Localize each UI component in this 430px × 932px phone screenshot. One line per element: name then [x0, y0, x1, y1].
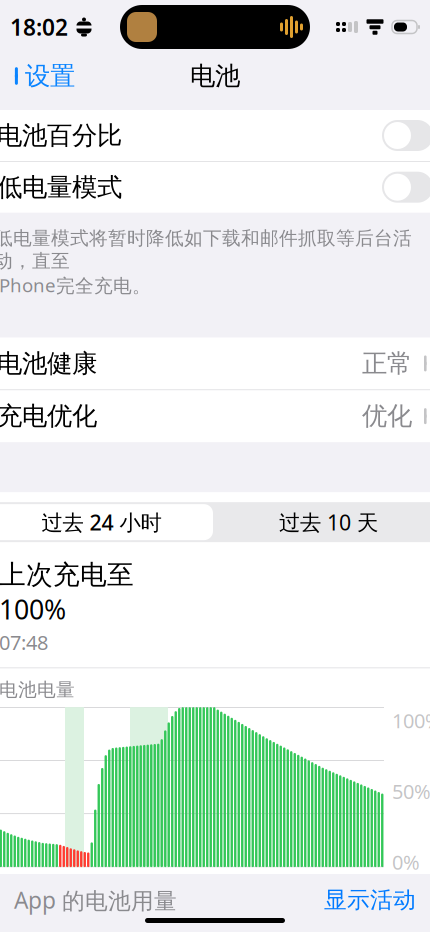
staticText: 21 [0, 905, 21, 931]
staticText: ⚡ [165, 877, 197, 906]
staticText: 优化 [362, 401, 412, 432]
button[interactable]: 电池健康 [0, 337, 430, 389]
button[interactable]: 过去 24 小时 [0, 502, 215, 542]
staticText: 0% [392, 849, 420, 875]
button[interactable]: 充电优化 [0, 390, 430, 442]
staticText: 正常 [362, 348, 412, 379]
button[interactable]: 电池百分比 [0, 110, 430, 161]
button[interactable]: 显示活动 [324, 886, 416, 914]
staticText: 100% [392, 707, 430, 734]
staticText: 12时 [250, 893, 272, 932]
staticText: 06 [149, 905, 171, 931]
staticText: 50% [392, 778, 430, 804]
staticText: 电池健康 [0, 348, 97, 379]
staticText: 18 [350, 905, 372, 931]
staticText: 09 [200, 905, 222, 931]
button[interactable]: 设置 [0, 54, 83, 97]
button[interactable]: 过去 10 天 [215, 502, 430, 542]
staticText: App 的电池用量 [14, 885, 177, 915]
staticText: 显示活动 [324, 886, 416, 914]
button[interactable]: 低电量模式 [0, 162, 430, 213]
staticText: 低电量模式将暂时降低如下载和邮件抓取等后台活动，直至 iPhone完全充电。 [0, 227, 412, 297]
staticText: 设置 [25, 60, 75, 91]
staticText: 电池电量 [0, 678, 75, 701]
staticText: 07:48 [0, 629, 48, 656]
staticText: 低电量模式 [0, 172, 122, 203]
staticText: 过去 10 天 [279, 508, 378, 536]
staticText: 03 [99, 905, 121, 931]
staticText: 0时 [49, 905, 80, 931]
staticText: 充电优化 [0, 401, 97, 432]
staticText: 上次充电至 100% [0, 556, 134, 627]
staticText: 过去 24 小时 [41, 508, 161, 536]
staticText: 电池 [190, 60, 240, 91]
staticText: 18:02 [10, 12, 68, 42]
staticText: 电池百分比 [0, 120, 122, 151]
